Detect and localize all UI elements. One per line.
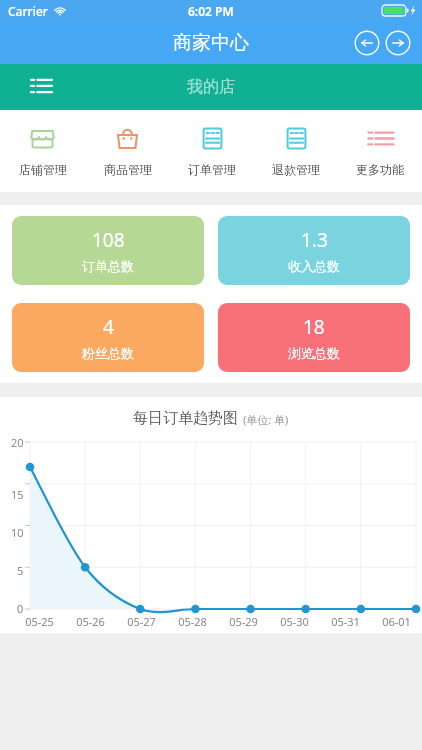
staticText: 15	[11, 487, 24, 502]
staticText: 订单总数	[82, 258, 134, 274]
button[interactable]: 订单管理	[170, 110, 254, 192]
staticText: 05-26	[65, 614, 116, 629]
button[interactable]: 更多功能	[338, 110, 422, 192]
button[interactable]: Back	[354, 30, 380, 56]
staticText: 20	[11, 435, 24, 450]
staticText: Carrier	[8, 3, 48, 19]
staticText: 商家中心	[173, 31, 249, 55]
staticText: 10	[11, 525, 24, 540]
staticText: 4	[103, 314, 114, 340]
staticText: 108	[92, 227, 125, 253]
staticText: 更多功能	[356, 162, 404, 177]
button[interactable]: 1.3	[218, 216, 410, 285]
staticText: (单位: 单)	[243, 412, 289, 427]
button[interactable]: 我的店	[187, 77, 235, 97]
button[interactable]: Forward	[385, 30, 411, 56]
staticText: 店铺管理	[19, 162, 67, 177]
staticText: 粉丝总数	[82, 345, 134, 361]
button[interactable]: 4	[12, 303, 204, 372]
staticText: 浏览总数	[288, 345, 340, 361]
staticText: 0	[17, 601, 24, 616]
staticText: 05-30	[269, 614, 320, 629]
staticText: 18	[303, 314, 325, 340]
button[interactable]: 商品管理	[85, 110, 170, 192]
staticText: 订单管理	[188, 162, 236, 177]
staticText: 1.3	[301, 227, 328, 253]
staticText: 05-27	[116, 614, 167, 629]
staticText: 6:02 PM	[188, 3, 234, 19]
staticText: 05-28	[167, 614, 218, 629]
button[interactable]: 18	[218, 303, 410, 372]
staticText: 05-31	[320, 614, 371, 629]
staticText: 每日订单趋势图	[133, 409, 238, 428]
staticText: 退款管理	[272, 162, 320, 177]
button[interactable]: Menu	[26, 72, 56, 102]
button[interactable]: 108	[12, 216, 204, 285]
staticText: 05-25	[14, 614, 65, 629]
button[interactable]: 店铺管理	[0, 110, 85, 192]
staticText: 06-01	[371, 614, 422, 629]
staticText: 05-29	[218, 614, 269, 629]
staticText: 5	[17, 563, 24, 578]
button[interactable]: 退款管理	[254, 110, 338, 192]
staticText: 商品管理	[104, 162, 152, 177]
staticText: 收入总数	[288, 258, 340, 274]
